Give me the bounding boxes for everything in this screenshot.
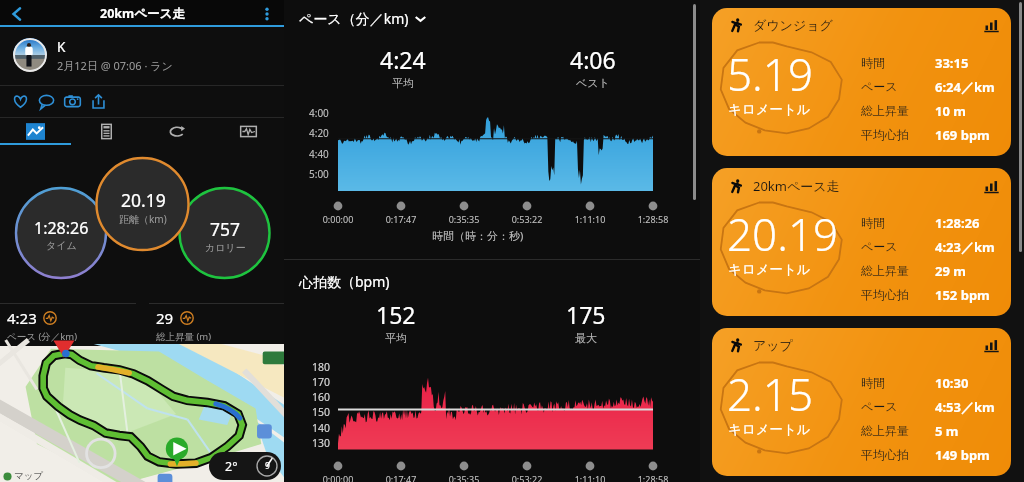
staticText: 0:53:22 [487, 213, 567, 225]
button[interactable]: ペース（分／km) [299, 7, 428, 29]
staticText: 総上昇量 [861, 103, 909, 118]
staticText: ペース [861, 239, 898, 254]
button[interactable]: 20kmペース走 [712, 168, 1011, 316]
staticText: 4:40 [309, 147, 329, 161]
staticText: 20kmペース走 [100, 5, 185, 22]
staticText: 総上昇量 [861, 423, 909, 438]
staticText: 20kmペース走 [753, 177, 840, 195]
staticText: 時間 [861, 55, 885, 70]
staticText: 0:00:00 [298, 213, 378, 225]
staticText: 4:53／km [935, 398, 995, 416]
staticText: 0:17:47 [361, 213, 441, 225]
staticText: 5:00 [309, 167, 329, 181]
button[interactable]: Like [8, 89, 32, 113]
button[interactable]: アップ [712, 328, 1011, 476]
staticText: 170 [312, 375, 331, 389]
staticText: 4:00 [309, 106, 329, 120]
button[interactable]: Chart details [984, 338, 999, 353]
staticText: 1:11:10 [550, 473, 630, 482]
staticText: 1:28:58 [613, 213, 693, 225]
staticText: ベスト [576, 76, 610, 90]
staticText: 4:23 [7, 308, 37, 328]
staticText: ペース (分／km) [7, 330, 78, 343]
button[interactable]: Share [86, 89, 110, 113]
staticText: 2.15 [727, 364, 814, 424]
button[interactable]: More options [258, 5, 276, 23]
button[interactable]: Back [6, 3, 28, 25]
staticText: 0:17:47 [361, 473, 441, 482]
staticText: キロメートル [728, 421, 811, 438]
button[interactable]: Photo [60, 89, 84, 113]
staticText: ペース [861, 79, 898, 94]
staticText: 時間 [861, 215, 885, 230]
staticText: 総上昇量 (m) [156, 330, 212, 343]
staticText: 150 [312, 405, 331, 419]
staticText: 33:15 [935, 54, 969, 72]
staticText: 169 bpm [935, 126, 990, 144]
staticText: 0:00:00 [298, 473, 378, 482]
button[interactable]: Splits [71, 118, 142, 145]
button[interactable]: 4:23 [7, 304, 149, 346]
staticText: ペース（分／km) [299, 9, 409, 28]
staticText: 時間（時：分：秒) [432, 228, 524, 243]
staticText: タイム [46, 239, 77, 252]
staticText: アップ [753, 337, 793, 353]
staticText: キロメートル [728, 261, 811, 278]
staticText: 149 bpm [935, 446, 990, 464]
staticText: 180 [312, 360, 331, 374]
staticText: 4:20 [309, 126, 329, 140]
staticText: 130 [312, 436, 331, 450]
staticText: 175 [566, 299, 606, 330]
staticText: 20.19 [121, 188, 166, 212]
staticText: ペース [861, 399, 898, 414]
button[interactable]: Overview [0, 118, 71, 145]
staticText: 0:35:35 [424, 473, 504, 482]
staticText: 1:28:26 [34, 217, 89, 239]
staticText: マップ [14, 470, 44, 482]
staticText: ダウンジョグ [753, 17, 833, 33]
button[interactable]: ダウンジョグ [712, 8, 1011, 156]
staticText: 757 [210, 217, 241, 241]
staticText: 平均心拍 [861, 127, 909, 142]
button[interactable]: Analysis [213, 118, 284, 145]
button[interactable]: Route map [0, 346, 284, 482]
staticText: 20.19 [727, 204, 839, 264]
staticText: 9 [265, 460, 270, 472]
staticText: 総上昇量 [861, 263, 909, 278]
staticText: カロリー [205, 241, 246, 254]
staticText: 4:24 [380, 44, 426, 75]
button[interactable]: 2° [225, 452, 278, 480]
staticText: K [57, 38, 66, 56]
staticText: 0:35:35 [424, 213, 504, 225]
staticText: 平均心拍 [861, 287, 909, 302]
staticText: 平均心拍 [861, 447, 909, 462]
staticText: 0:53:22 [487, 473, 567, 482]
staticText: 平均 [385, 331, 407, 345]
button[interactable]: K [13, 30, 284, 80]
staticText: 10:30 [935, 374, 969, 392]
staticText: 2° [225, 458, 238, 475]
staticText: 152 bpm [935, 286, 990, 304]
staticText: 時間 [861, 375, 885, 390]
staticText: 2月12日 @ 07:06 · ラン [57, 58, 173, 73]
staticText: 152 [376, 299, 416, 330]
staticText: 29 m [935, 262, 966, 280]
staticText: 29 [156, 308, 174, 328]
staticText: 心拍数（bpm) [299, 272, 390, 291]
staticText: 最大 [575, 331, 597, 345]
staticText: 140 [312, 421, 331, 435]
button[interactable]: Laps [142, 118, 213, 145]
button[interactable]: Comment [34, 89, 58, 113]
staticText: キロメートル [728, 101, 811, 118]
staticText: 10 m [935, 102, 966, 120]
button[interactable]: 29 [156, 304, 284, 346]
staticText: 160 [312, 390, 331, 404]
button[interactable]: Chart details [984, 179, 999, 194]
staticText: 6:24／km [935, 78, 995, 96]
staticText: 1:11:10 [550, 213, 630, 225]
staticText: 1:28:26 [935, 214, 980, 232]
button[interactable]: Chart details [984, 18, 999, 33]
staticText: 5 m [935, 422, 959, 440]
staticText: 距離（km) [119, 212, 167, 226]
staticText: 4:23／km [935, 238, 995, 256]
